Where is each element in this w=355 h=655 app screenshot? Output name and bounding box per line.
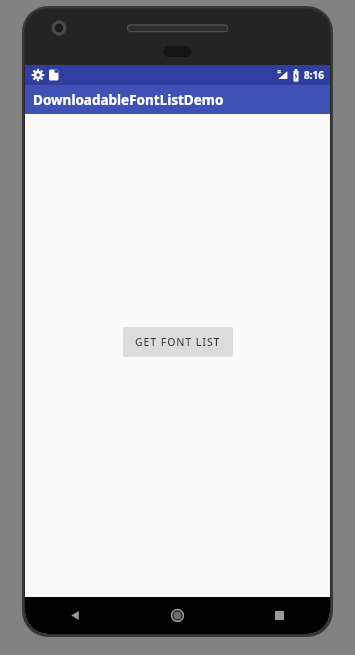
staticText: 8:16 [304,68,324,82]
button[interactable]: Back [25,597,126,634]
staticText: DownloadableFontListDemo [33,91,224,109]
staticText: GET FONT LIST [135,335,221,349]
button[interactable]: Home [126,597,228,634]
button[interactable]: Recent apps [228,597,330,634]
button[interactable]: GET FONT LIST [123,327,233,357]
